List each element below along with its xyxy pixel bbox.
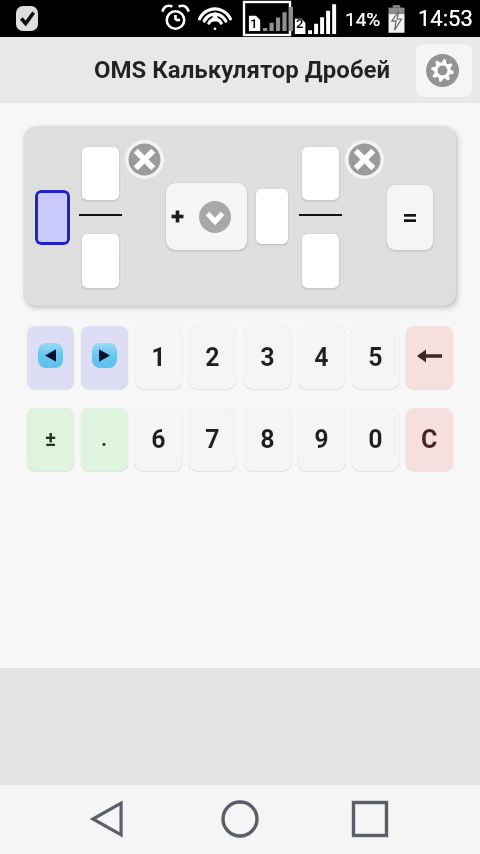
button[interactable]: Operator (166, 183, 247, 250)
button[interactable]: 7 (189, 408, 236, 471)
staticText: OMS Калькулятор Дробей (94, 56, 391, 84)
button[interactable]: Recents (346, 795, 394, 843)
button[interactable]: 4 (298, 326, 345, 389)
button[interactable]: 6 (135, 408, 182, 471)
button[interactable]: Back (83, 795, 131, 843)
button[interactable]: Numerator (82, 147, 119, 200)
button[interactable]: 0 (352, 408, 399, 471)
staticText: 3 (260, 343, 275, 372)
button[interactable]: 3 (244, 326, 291, 389)
button[interactable]: 1 (135, 326, 182, 389)
staticText: 4 (314, 343, 329, 372)
button[interactable]: 5 (352, 326, 399, 389)
staticText: 2 (296, 16, 304, 31)
staticText: ± (45, 427, 57, 452)
staticText: 14% (345, 8, 381, 30)
staticText: 6 (151, 425, 166, 454)
button[interactable]: Whole number 2 (256, 189, 288, 244)
staticText: 5 (368, 343, 383, 372)
staticText: 14:53 (418, 6, 473, 32)
button[interactable]: Clear (345, 140, 384, 179)
button[interactable]: Settings (416, 44, 472, 97)
staticText: C (421, 425, 438, 454)
staticText: 0 (368, 425, 383, 454)
staticText: 9 (314, 425, 329, 454)
button[interactable]: Numerator (302, 147, 339, 200)
button[interactable]: Denominator (302, 234, 339, 288)
staticText: 1 (151, 343, 166, 372)
staticText: 1 (250, 16, 258, 31)
staticText: 2 (205, 343, 220, 372)
button[interactable]: Backspace (406, 326, 453, 389)
button[interactable]: C (406, 408, 453, 471)
button[interactable]: Equals (387, 185, 433, 250)
staticText: . (101, 427, 108, 452)
button[interactable]: Home (216, 795, 264, 843)
button[interactable]: . (81, 408, 128, 471)
button[interactable]: Move right (81, 326, 128, 389)
button[interactable]: Move left (27, 326, 74, 389)
button[interactable]: Clear (125, 140, 164, 179)
button[interactable]: Denominator (82, 234, 119, 288)
button[interactable]: Whole number (35, 190, 70, 245)
button[interactable]: 2 (189, 326, 236, 389)
staticText: 8 (260, 425, 275, 454)
button[interactable]: ± (27, 408, 74, 471)
button[interactable]: 8 (244, 408, 291, 471)
staticText: 7 (205, 425, 220, 454)
button[interactable]: 9 (298, 408, 345, 471)
